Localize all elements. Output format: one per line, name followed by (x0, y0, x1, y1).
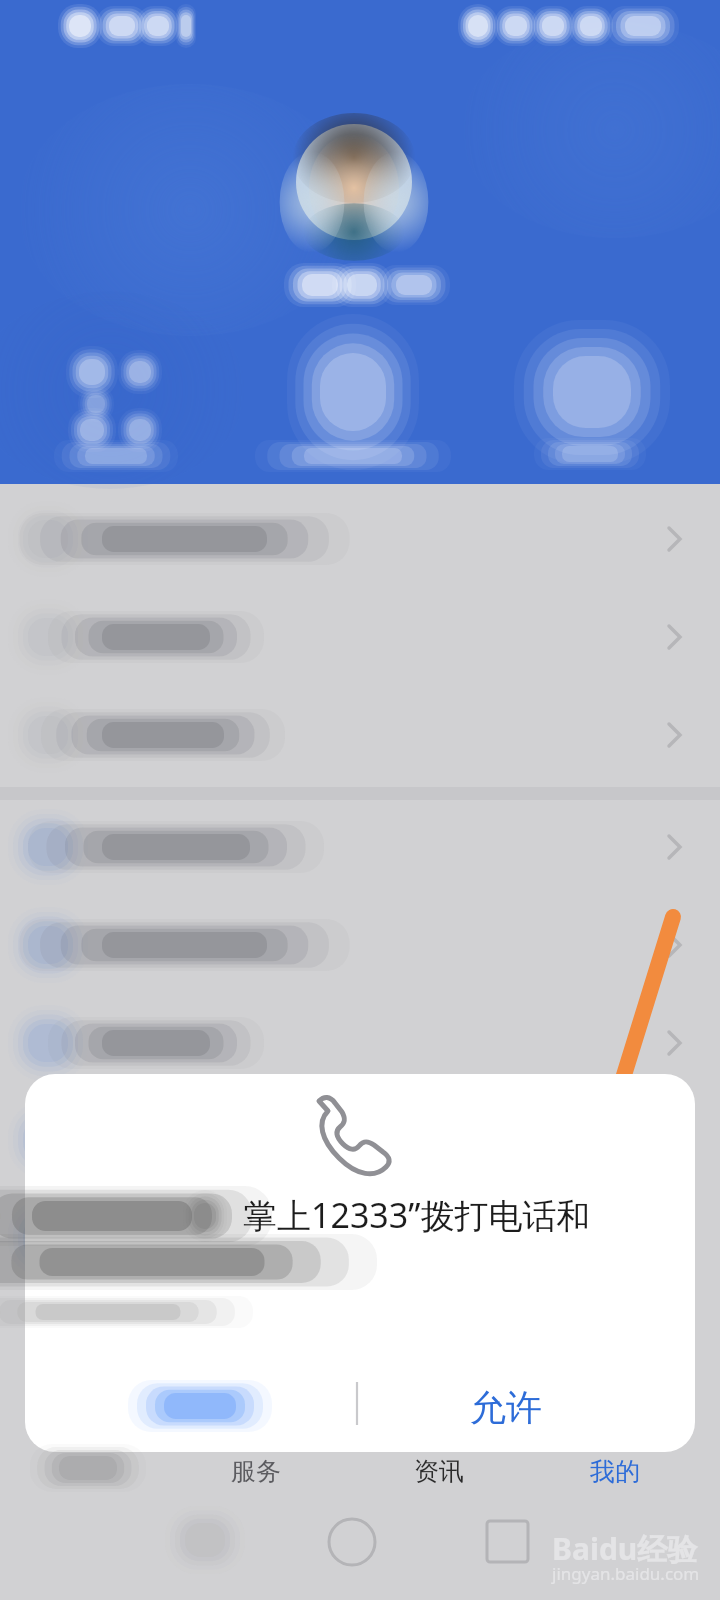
staticText: 掌上12333”拨打电话和 (243, 1192, 591, 1238)
button[interactable] (0, 1450, 176, 1492)
staticText: Baidu经验 (552, 1528, 698, 1569)
staticText: 允许 (470, 1385, 542, 1430)
button[interactable]: 我的 (528, 1450, 704, 1492)
staticText: 服务 (231, 1456, 281, 1487)
button[interactable]: 允许 (370, 1375, 690, 1437)
button[interactable] (30, 1375, 355, 1437)
button[interactable]: Recents (470, 1505, 546, 1577)
button[interactable]: Home (312, 1505, 392, 1577)
button[interactable]: 服务 (176, 1450, 352, 1492)
button[interactable]: Back (160, 1505, 250, 1577)
staticText: 资讯 (414, 1456, 464, 1487)
button[interactable]: 资讯 (352, 1450, 528, 1492)
staticText: jingyan.baidu.com (552, 1562, 700, 1585)
staticText: 我的 (590, 1456, 640, 1487)
